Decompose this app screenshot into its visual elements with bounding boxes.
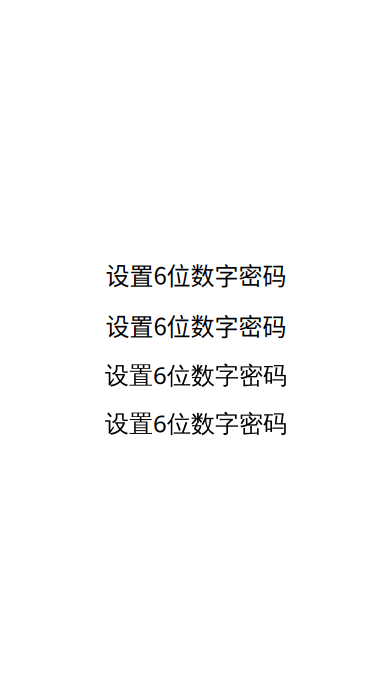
staticText: 设置6位数字密码 [105,358,287,391]
staticText: 设置6位数字密码 [105,308,286,342]
staticText: 设置6位数字密码 [105,257,286,292]
staticText: 设置6位数字密码 [105,407,287,439]
